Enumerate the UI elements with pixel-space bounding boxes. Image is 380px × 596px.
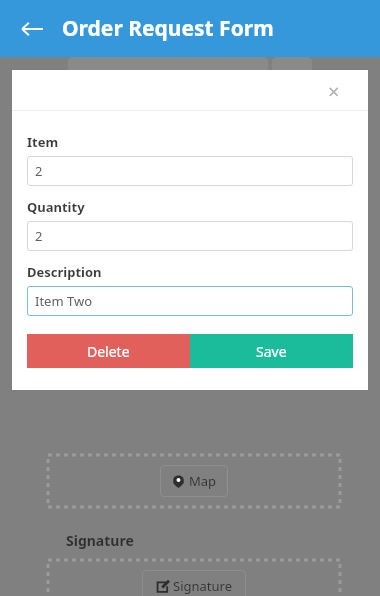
staticText: Order Request Form xyxy=(62,14,274,43)
staticText: Signature xyxy=(66,531,134,550)
staticText: Description xyxy=(27,263,102,281)
button[interactable]: 2 xyxy=(27,221,353,251)
staticText: × xyxy=(328,78,340,102)
staticText: Save xyxy=(256,342,287,361)
staticText: Delete xyxy=(87,342,130,361)
staticText: Quantity xyxy=(27,198,85,216)
staticText: 2 xyxy=(35,162,43,180)
button[interactable]: 2 xyxy=(27,156,353,186)
button[interactable]: Map xyxy=(160,465,228,497)
button[interactable]: Save xyxy=(190,334,353,368)
staticText: 2 xyxy=(35,227,43,245)
staticText: Map xyxy=(189,472,217,490)
button[interactable]: Item Two xyxy=(27,286,353,316)
staticText: Item Two xyxy=(35,292,93,310)
staticText: Item xyxy=(27,133,59,151)
staticText: Signature xyxy=(173,577,232,595)
button[interactable]: Close xyxy=(322,78,346,102)
button[interactable]: Delete xyxy=(27,334,190,368)
button[interactable]: Back xyxy=(8,5,56,53)
button[interactable]: Signature xyxy=(142,570,246,596)
